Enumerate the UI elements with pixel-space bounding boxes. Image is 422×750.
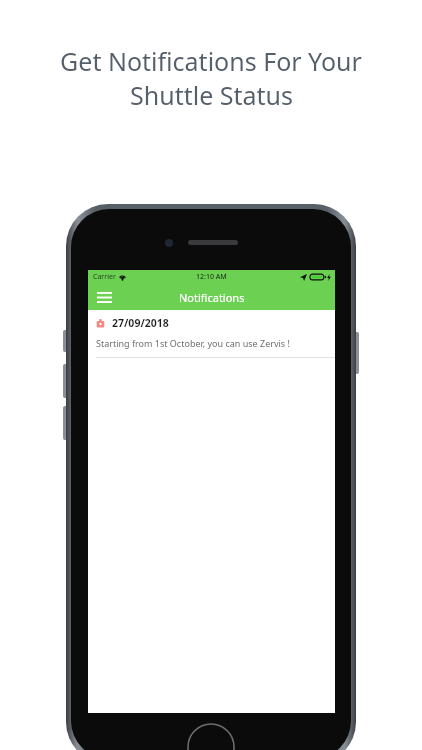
staticText: 27/09/2018 — [112, 316, 169, 330]
button[interactable]: Open navigation menu — [93, 286, 115, 308]
staticText: Notifications — [179, 290, 245, 305]
staticText: Starting from 1st October, you can use Z… — [96, 337, 290, 349]
staticText: Shuttle Status — [130, 78, 293, 112]
staticText: Carrier — [93, 272, 116, 282]
staticText: Get Notifications For Your — [60, 44, 362, 78]
staticText: 12:10 AM — [196, 272, 227, 282]
button[interactable]: 27/09/2018 — [88, 310, 335, 358]
